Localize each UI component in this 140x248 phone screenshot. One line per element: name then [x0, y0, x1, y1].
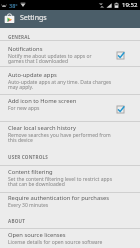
staticText: Require authentication for purchases — [8, 194, 110, 202]
staticText: Notifications — [8, 45, 43, 53]
button[interactable]: Clear local search history — [0, 122, 140, 149]
staticText: Add icon to Home screen — [8, 97, 77, 105]
staticText: Remove searches you have performed from … — [8, 132, 115, 144]
staticText: Every 30 minutes — [8, 202, 49, 209]
staticText: Settings — [20, 13, 47, 23]
button[interactable]: Content filtering — [0, 166, 140, 192]
staticText: Set the content filtering level to restr… — [8, 176, 115, 188]
staticText: Notify me about updates to apps or games… — [8, 53, 103, 65]
staticText: GENERAL — [8, 34, 31, 40]
staticText: ABOUT — [8, 218, 25, 224]
button[interactable]: Open source licenses — [0, 229, 140, 248]
button[interactable]: Toggle setting — [115, 50, 126, 61]
staticText: Auto-update apps — [8, 71, 57, 79]
button[interactable]: Notifications — [0, 41, 140, 66]
button[interactable]: Google Play Store — [4, 13, 15, 24]
staticText: Open source licenses — [8, 231, 66, 239]
staticText: 38° — [9, 2, 18, 9]
button[interactable]: Auto-update apps — [0, 67, 140, 94]
staticText: License details for open source software — [8, 239, 103, 246]
button[interactable]: Toggle setting — [115, 104, 126, 115]
staticText: USER CONTROLS — [8, 154, 49, 160]
button[interactable]: Require authentication for purchases — [0, 193, 140, 216]
staticText: Clear local search history — [8, 124, 76, 132]
button[interactable]: Add icon to Home screen — [0, 95, 140, 121]
staticText: For new apps — [8, 105, 40, 112]
staticText: Auto-update apps at any time. Data charg… — [8, 79, 115, 91]
staticText: 19:52 — [122, 1, 138, 9]
staticText: Content filtering — [8, 168, 53, 176]
